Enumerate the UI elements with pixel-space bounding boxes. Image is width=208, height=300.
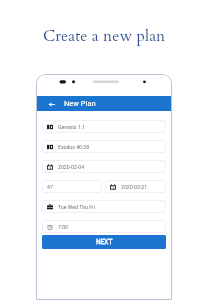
button[interactable]: Exodus 40:38 [42, 140, 166, 153]
staticText: Exodus 40:38 [58, 144, 90, 150]
staticText: Genesis 1:1 [58, 124, 85, 130]
button[interactable]: Genesis 1:1 [42, 120, 166, 133]
button[interactable]: Back [46, 99, 56, 109]
button[interactable]: 2020-02-04 [42, 160, 166, 173]
button[interactable]: 2020-03-21 [105, 180, 166, 193]
staticText: Create a new plan [43, 25, 166, 47]
staticText: 2020-03-21 [121, 184, 148, 190]
staticText: Tue Wed Thu Fri [58, 204, 96, 210]
staticText: NEXT [96, 238, 113, 246]
staticText: New Plan [64, 99, 96, 108]
button[interactable]: NEXT [42, 235, 166, 249]
button[interactable]: Tue Wed Thu Fri [42, 200, 166, 213]
button[interactable]: 47 [42, 180, 102, 193]
button[interactable]: 7:00 [42, 220, 166, 233]
staticText: 2020-02-04 [58, 164, 85, 170]
staticText: 47 [47, 184, 53, 190]
staticText: 7:00 [58, 224, 69, 230]
